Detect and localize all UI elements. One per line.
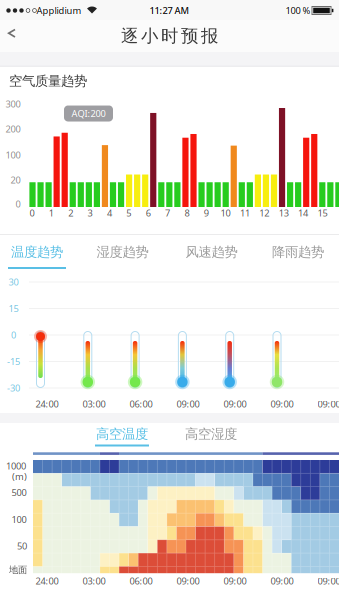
staticText: 地面 (9, 564, 27, 576)
staticText: 50 (17, 540, 27, 552)
staticText: 12 (259, 207, 269, 219)
staticText: 11 (240, 207, 250, 219)
staticText: 06:00 (129, 575, 152, 587)
staticText: 6 (146, 207, 151, 219)
staticText: 11:27 AM (149, 4, 189, 17)
staticText: 高空温度 (96, 426, 148, 442)
staticText: -30 (7, 382, 20, 394)
staticText: 03:00 (82, 398, 105, 410)
staticText: 空气质量趋势 (9, 73, 87, 89)
staticText: 湿度趋势 (96, 244, 148, 260)
staticText: 4 (107, 207, 112, 219)
staticText: 逐小时预报 (121, 25, 218, 47)
staticText: 06:00 (129, 398, 152, 410)
button[interactable]: 温度趋势 (0, 237, 75, 267)
staticText: 100 (5, 149, 20, 161)
staticText: 200 (5, 123, 20, 135)
staticText: 1 (49, 207, 54, 219)
staticText: 24:00 (35, 575, 58, 587)
staticText: 15 (8, 302, 18, 315)
staticText: -15 (7, 355, 20, 368)
staticText: 24:00 (35, 398, 58, 410)
staticText: 09:00 (317, 398, 339, 410)
staticText: 30 (8, 276, 18, 288)
button[interactable]: 降雨趋势 (260, 237, 336, 267)
staticText: 7 (165, 207, 170, 219)
staticText: Applidium (36, 4, 81, 17)
staticText: 0 (15, 198, 20, 210)
button[interactable]: 高空温度 (89, 424, 155, 444)
staticText: 09:00 (223, 575, 246, 587)
staticText: 1000 (6, 460, 26, 472)
staticText: 13 (279, 207, 289, 219)
staticText: 09:00 (176, 398, 199, 410)
staticText: 300 (5, 98, 20, 110)
staticText: 09:00 (270, 575, 293, 587)
staticText: 20 (10, 174, 20, 186)
staticText: 15 (317, 207, 327, 219)
staticText: 500 (11, 486, 26, 499)
button[interactable]: 高空湿度 (178, 424, 244, 444)
staticText: 5 (126, 207, 131, 219)
staticText: 0 (29, 207, 34, 219)
staticText: 09:00 (176, 575, 199, 587)
staticText: 0 (11, 329, 16, 341)
staticText: 降雨趋势 (272, 244, 324, 260)
button[interactable]: 湿度趋势 (84, 237, 160, 267)
staticText: AQI:200 (71, 107, 105, 120)
staticText: 03:00 (82, 575, 105, 587)
button[interactable]: 风速趋势 (173, 237, 249, 267)
staticText: 09:00 (270, 398, 293, 410)
staticText: 10 (221, 207, 231, 219)
staticText: 09:00 (223, 398, 246, 410)
button[interactable]: Back (0, 0, 26, 30)
staticText: 高空湿度 (185, 426, 237, 442)
staticText: 8 (184, 207, 189, 219)
staticText: 温度趋势 (11, 244, 63, 260)
staticText: 2 (68, 207, 73, 219)
staticText: (m) (12, 470, 27, 483)
staticText: 100 (11, 513, 26, 526)
staticText: 风速趋势 (185, 244, 237, 260)
staticText: 09:00 (317, 575, 339, 587)
staticText: 14 (298, 207, 308, 219)
staticText: 3 (88, 207, 93, 219)
staticText: 9 (204, 207, 209, 219)
staticText: 100 % (285, 4, 310, 17)
